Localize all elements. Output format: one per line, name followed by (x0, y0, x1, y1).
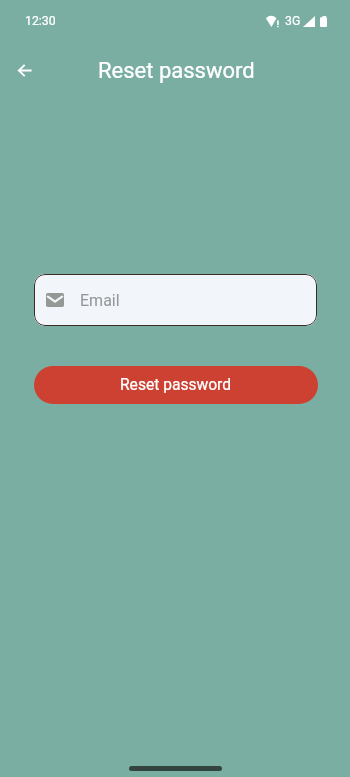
staticText: 3G (285, 14, 301, 28)
button[interactable]: Back (5, 50, 45, 90)
staticText: Email (80, 291, 120, 310)
button[interactable]: Email (34, 274, 317, 326)
staticText: 12:30 (25, 14, 56, 28)
staticText: Reset password (98, 58, 255, 84)
button[interactable]: Reset password (34, 366, 318, 404)
staticText: Reset password (120, 376, 232, 394)
